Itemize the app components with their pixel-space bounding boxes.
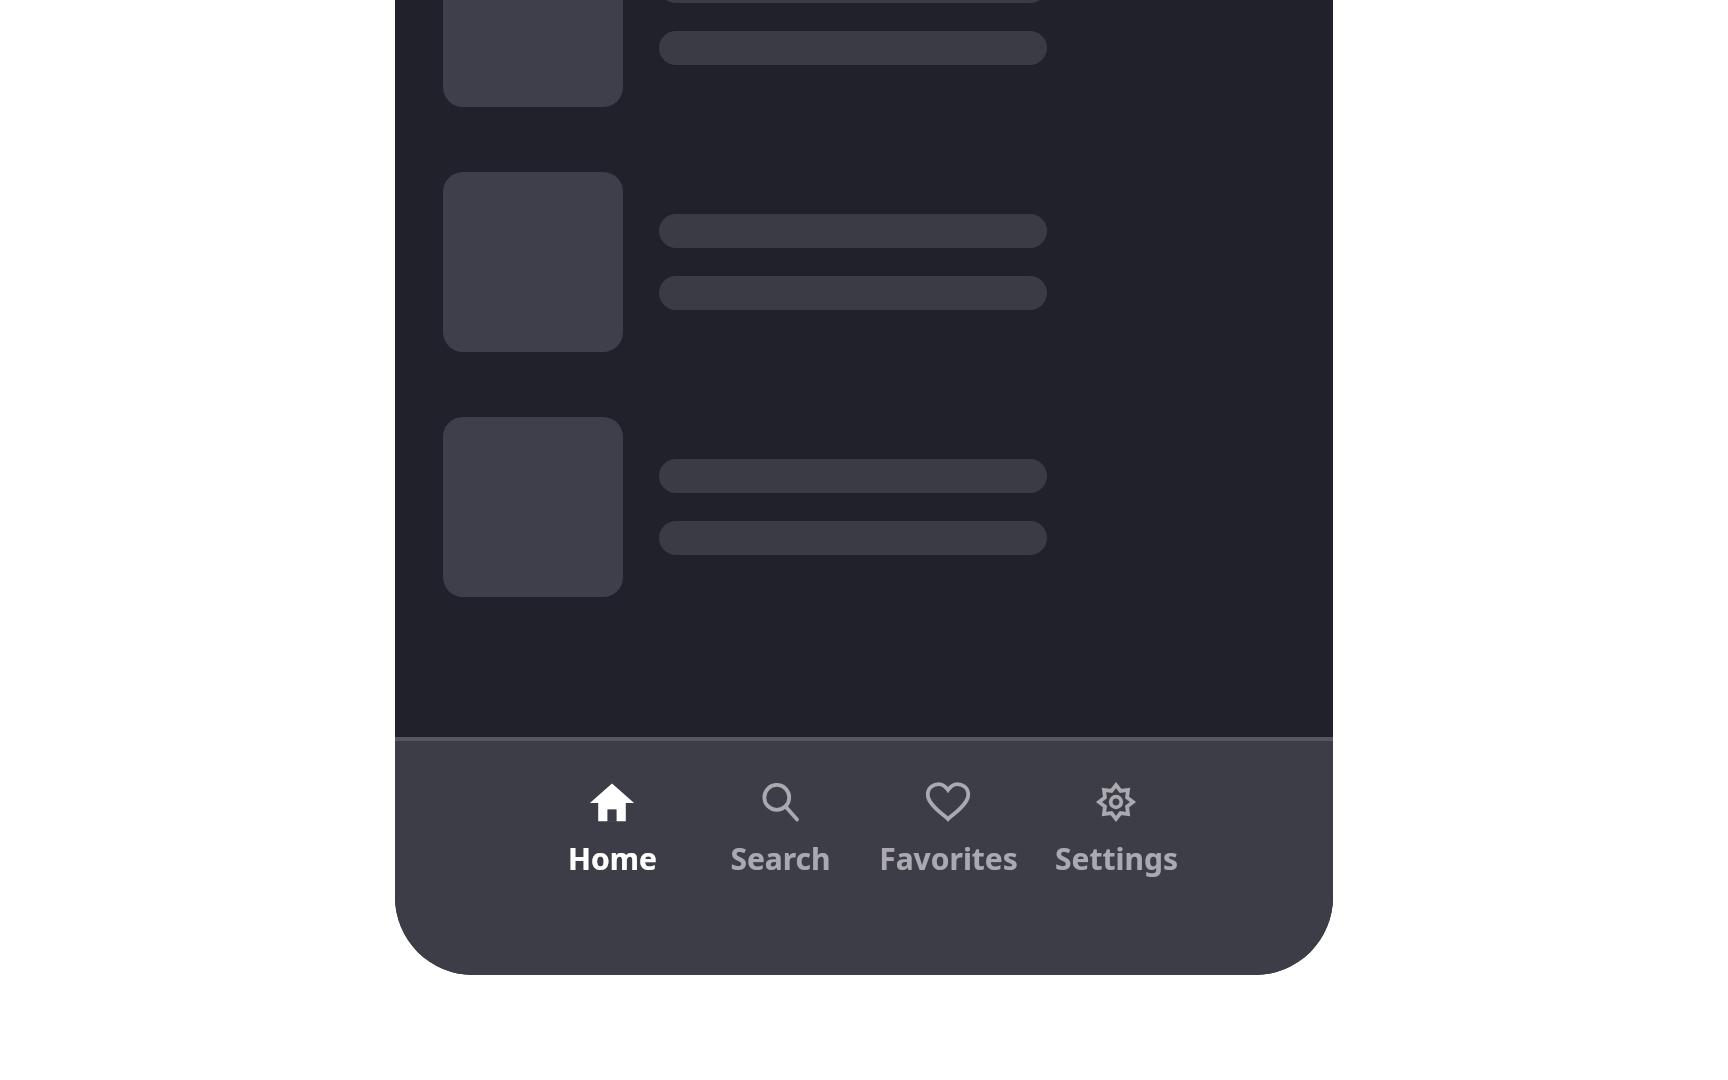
staticText: Home: [568, 838, 657, 879]
button[interactable]: [443, 0, 1285, 107]
button[interactable]: Home: [528, 777, 696, 881]
staticText: Settings: [1055, 838, 1178, 879]
staticText: Favorites: [879, 838, 1018, 879]
staticText: Search: [730, 838, 831, 879]
button[interactable]: [443, 417, 1285, 597]
button[interactable]: Search: [696, 777, 864, 881]
button[interactable]: Settings: [1032, 777, 1200, 881]
button[interactable]: [443, 172, 1285, 352]
button[interactable]: Favorites: [864, 777, 1032, 881]
